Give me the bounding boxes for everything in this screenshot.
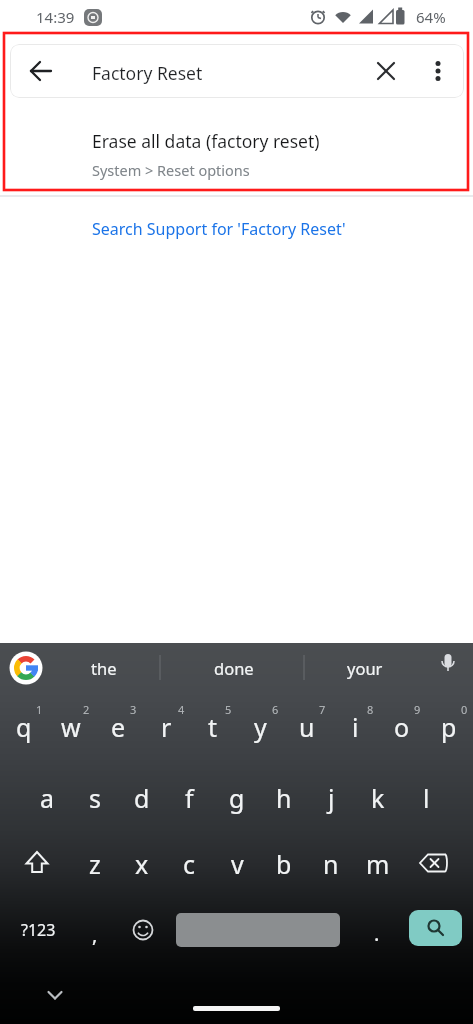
button[interactable] — [25, 55, 57, 87]
staticText: s — [89, 781, 101, 815]
staticText: r — [161, 710, 172, 744]
button[interactable]: the — [60, 645, 148, 690]
staticText: f — [185, 781, 194, 815]
staticText: Factory Reset — [92, 61, 203, 85]
staticText: l — [423, 781, 430, 815]
button[interactable] — [193, 1006, 280, 1011]
staticText: ?123 — [21, 919, 56, 941]
button[interactable]: f — [166, 768, 212, 828]
staticText: t — [208, 710, 218, 744]
staticText: 1 — [36, 702, 43, 717]
button[interactable]: j — [308, 768, 354, 828]
button[interactable]: r — [143, 697, 189, 757]
button[interactable]: . — [360, 908, 394, 958]
button[interactable]: n — [308, 834, 354, 894]
button[interactable] — [121, 906, 165, 954]
staticText: h — [276, 781, 292, 815]
staticText: System > Reset options — [92, 160, 250, 180]
staticText: 6 — [272, 702, 279, 717]
staticText: a — [40, 781, 55, 815]
button[interactable]: e — [95, 697, 141, 757]
staticText: , — [92, 921, 98, 948]
button[interactable] — [409, 910, 462, 946]
button[interactable] — [35, 980, 75, 1012]
staticText: 9 — [414, 702, 421, 717]
staticText: z — [89, 847, 101, 881]
staticText: 3 — [130, 702, 137, 717]
button[interactable]: y — [237, 697, 283, 757]
button[interactable]: ?123 — [10, 905, 66, 955]
button[interactable]: s — [72, 768, 118, 828]
button[interactable]: b — [261, 834, 307, 894]
staticText: e — [111, 710, 126, 744]
button[interactable]: i — [332, 697, 378, 757]
button[interactable] — [14, 840, 62, 888]
staticText: the — [91, 657, 117, 679]
button[interactable]: d — [119, 768, 165, 828]
button[interactable] — [410, 840, 460, 888]
button[interactable]: v — [214, 834, 260, 894]
staticText: u — [299, 710, 315, 744]
staticText: k — [371, 781, 385, 815]
button[interactable]: m — [355, 834, 401, 894]
button[interactable]: q — [1, 697, 47, 757]
button[interactable]: t — [190, 697, 236, 757]
button[interactable]: w — [48, 697, 94, 757]
staticText: 64% — [416, 7, 446, 27]
button[interactable]: x — [119, 834, 165, 894]
staticText: 0 — [461, 702, 468, 717]
staticText: 8 — [367, 702, 374, 717]
button[interactable]: Search Support for 'Factory Reset' — [92, 218, 346, 240]
button[interactable]: k — [355, 768, 401, 828]
button[interactable]: u — [284, 697, 330, 757]
staticText: p — [441, 710, 457, 744]
staticText: i — [352, 710, 359, 744]
staticText: m — [366, 847, 390, 881]
button[interactable] — [430, 648, 468, 688]
staticText: b — [276, 847, 292, 881]
staticText: c — [183, 847, 196, 881]
button[interactable] — [8, 650, 44, 686]
staticText: y — [254, 710, 267, 744]
staticText: x — [135, 847, 149, 881]
staticText: w — [61, 710, 81, 744]
button[interactable] — [424, 55, 454, 87]
staticText: v — [231, 847, 244, 881]
button[interactable]: z — [72, 834, 118, 894]
button[interactable] — [10, 44, 464, 98]
button[interactable]: a — [24, 768, 70, 828]
staticText: g — [229, 781, 245, 815]
staticText: n — [323, 847, 339, 881]
button[interactable]: g — [214, 768, 260, 828]
button[interactable]: o — [379, 697, 425, 757]
staticText: q — [16, 710, 32, 744]
button[interactable]: h — [261, 768, 307, 828]
button[interactable] — [0, 112, 473, 190]
staticText: 4 — [178, 702, 185, 717]
staticText: 7 — [319, 702, 326, 717]
staticText: 2 — [83, 702, 90, 717]
staticText: your — [347, 657, 383, 679]
staticText: 14:39 — [36, 7, 75, 27]
button[interactable]: l — [403, 768, 449, 828]
staticText: 5 — [225, 702, 232, 717]
staticText: . — [374, 920, 380, 947]
staticText: o — [394, 710, 410, 744]
staticText: d — [134, 781, 150, 815]
button[interactable]: done — [172, 645, 296, 690]
button[interactable]: p — [426, 697, 472, 757]
button[interactable] — [370, 55, 402, 87]
button[interactable]: , — [78, 909, 112, 959]
button[interactable] — [176, 913, 340, 947]
staticText: Erase all data (factory reset) — [92, 129, 320, 153]
staticText: j — [328, 781, 335, 815]
button[interactable]: c — [166, 834, 212, 894]
staticText: done — [214, 657, 254, 679]
button[interactable]: your — [315, 645, 415, 690]
